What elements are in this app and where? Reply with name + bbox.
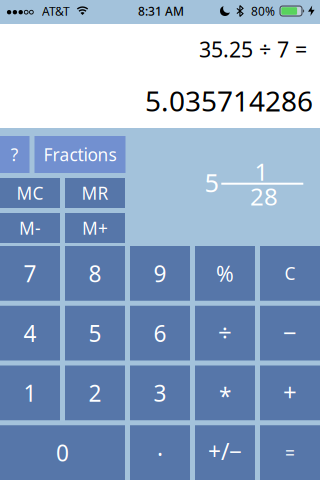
staticText: +/− [208, 436, 242, 466]
button[interactable]: 6 [130, 306, 190, 361]
button[interactable]: = [260, 425, 320, 480]
staticText: 1 [254, 156, 268, 187]
staticText: = [285, 441, 295, 464]
staticText: 8 [88, 258, 101, 288]
staticText: 0 [56, 438, 69, 468]
staticText: 4 [23, 318, 36, 348]
staticText: * [219, 381, 231, 411]
button[interactable]: M+ [65, 213, 125, 243]
staticText: M- [19, 216, 41, 239]
button[interactable]: 8 [65, 246, 125, 301]
button[interactable]: 5 [65, 306, 125, 361]
button[interactable]: * [195, 365, 255, 420]
staticText: ? [11, 143, 19, 166]
button[interactable]: 1 [0, 365, 60, 420]
staticText: M+ [82, 216, 108, 239]
staticText: 1 [23, 378, 36, 408]
staticText: 8:31 AM [138, 3, 184, 19]
button[interactable]: 4 [0, 306, 60, 361]
staticText: 80% [251, 3, 275, 19]
button[interactable]: . [130, 425, 190, 480]
staticText: 3 [153, 378, 166, 408]
button[interactable]: 7 [0, 246, 60, 301]
staticText: 9 [153, 258, 166, 288]
button[interactable]: 2 [65, 365, 125, 420]
staticText: 7 [23, 258, 36, 288]
staticText: − [283, 316, 297, 348]
button[interactable]: ? [0, 136, 29, 173]
staticText: 28 [250, 180, 278, 212]
button[interactable]: 9 [130, 246, 190, 301]
staticText: MR [81, 181, 108, 204]
staticText: 35.25 ÷ 7 = [199, 35, 307, 63]
staticText: MC [16, 181, 43, 204]
staticText: 6 [153, 318, 166, 348]
staticText: 2 [88, 378, 101, 408]
staticText: 5 [204, 166, 218, 199]
button[interactable]: % [195, 246, 255, 301]
button[interactable]: MC [0, 178, 60, 208]
button[interactable]: 0 [0, 425, 125, 480]
button[interactable]: 3 [130, 365, 190, 420]
button[interactable]: ÷ [195, 306, 255, 361]
staticText: % [216, 259, 234, 287]
staticText: 5 [88, 318, 101, 348]
staticText: 5.035714286 [145, 82, 313, 119]
button[interactable]: + [260, 365, 320, 420]
button[interactable]: Fractions [34, 136, 125, 173]
button[interactable]: +/− [195, 425, 255, 480]
staticText: C [284, 262, 295, 285]
staticText: . [157, 432, 163, 462]
staticText: ÷ [218, 316, 232, 348]
button[interactable]: − [260, 306, 320, 361]
button[interactable]: MR [65, 178, 125, 208]
staticText: + [283, 376, 297, 408]
button[interactable]: C [260, 246, 320, 301]
button[interactable]: M- [0, 213, 60, 243]
staticText: AT&T [42, 3, 70, 19]
staticText: Fractions [43, 143, 116, 166]
